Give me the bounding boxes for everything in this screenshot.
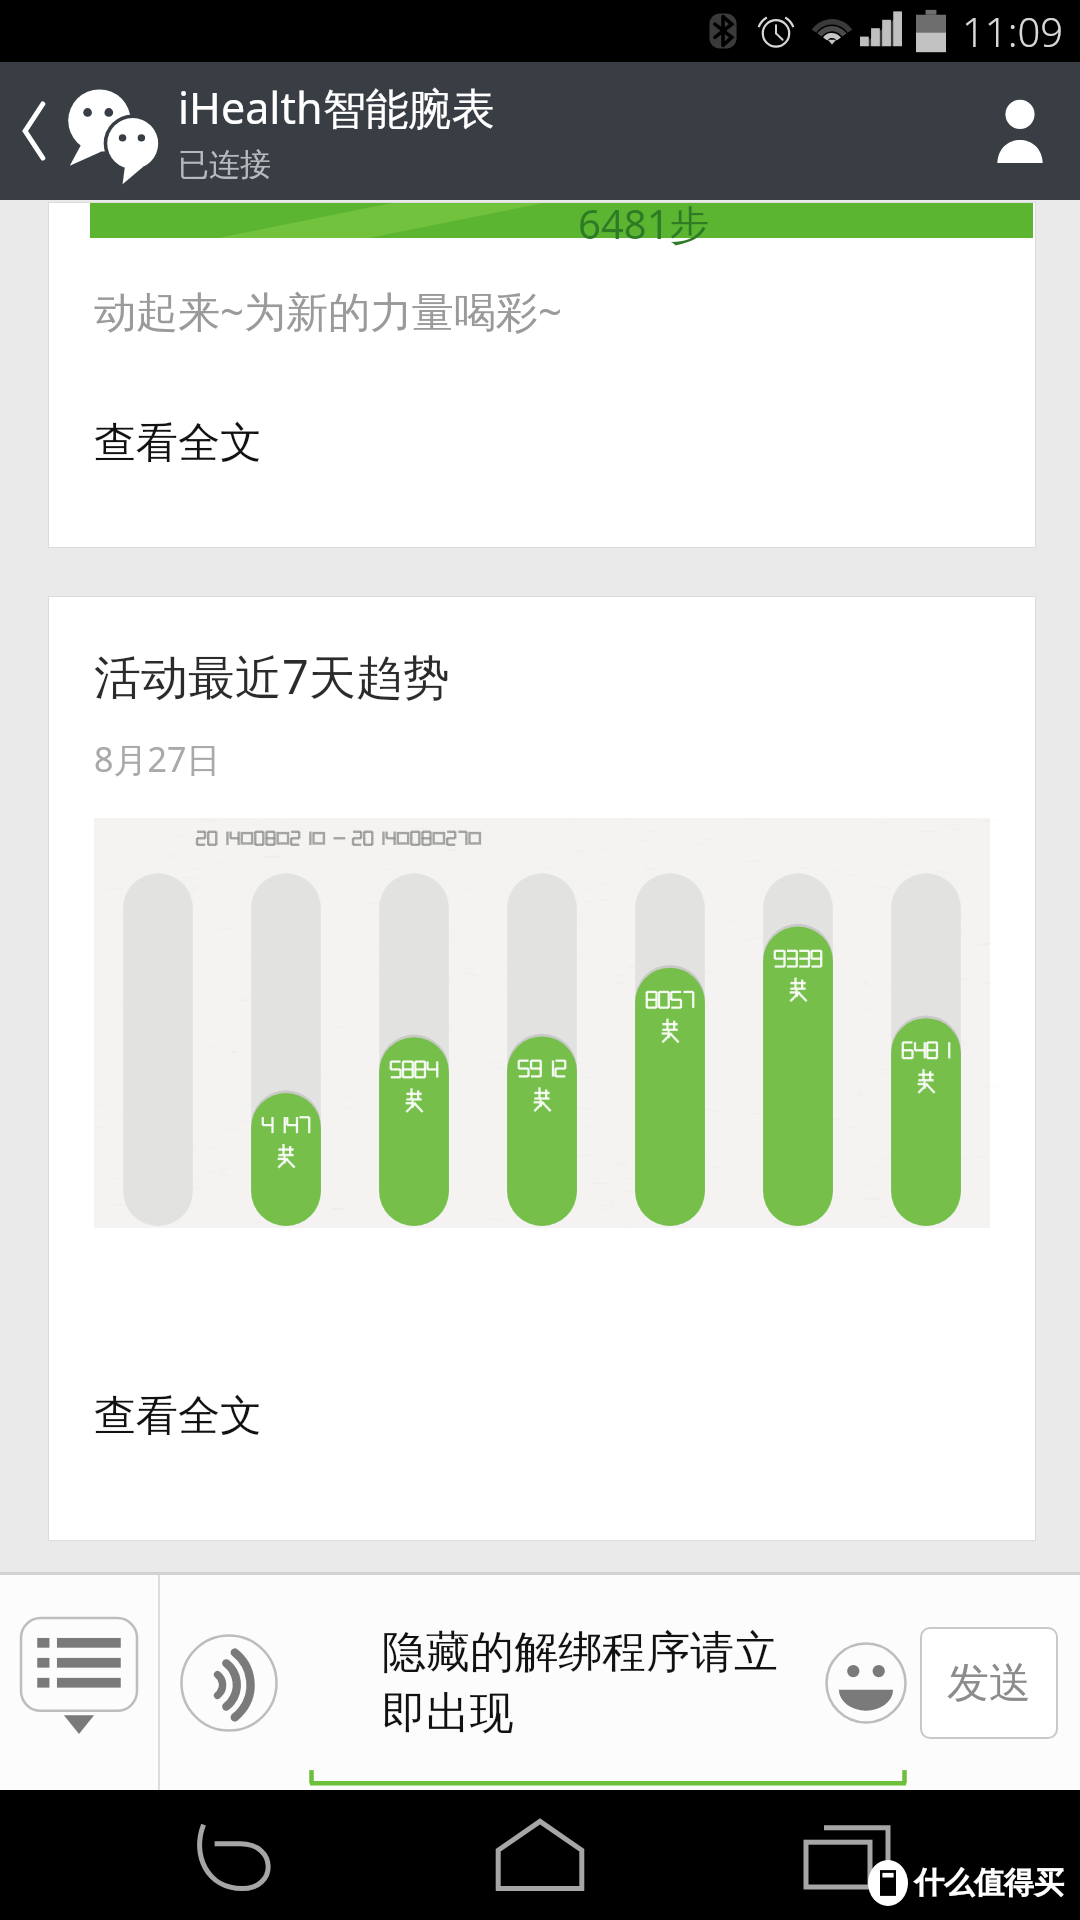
button[interactable]: Contact profile: [960, 62, 1080, 200]
button[interactable]: Menu: [0, 1575, 158, 1790]
button[interactable]: Back: [158, 1790, 308, 1920]
staticText: 11:09: [962, 4, 1064, 58]
staticText: 隐藏的解绑程序请立: [382, 1625, 778, 1680]
button[interactable]: Recent apps: [773, 1790, 923, 1920]
staticText: 动起来~为新的力量喝彩~: [94, 282, 563, 339]
staticText: 8月27日: [94, 736, 221, 782]
staticText: 即出现: [382, 1686, 514, 1741]
button[interactable]: Emoji: [818, 1608, 914, 1758]
button[interactable]: Back: [0, 62, 70, 200]
button[interactable]: 动起来~为新的力量喝彩~: [48, 202, 1036, 548]
staticText: 查看全文: [94, 417, 262, 470]
button[interactable]: Home: [465, 1790, 615, 1920]
staticText: 查看全文: [94, 1390, 262, 1443]
button[interactable]: 活动最近7天趋势: [48, 596, 1036, 1541]
button[interactable]: 发送: [920, 1627, 1058, 1739]
staticText: 已连接: [178, 145, 271, 184]
staticText: 发送: [947, 1657, 1031, 1710]
button[interactable]: 隐藏的解绑程序请立: [298, 1575, 914, 1790]
button[interactable]: 查看全文: [48, 417, 1036, 470]
staticText: 6481步: [578, 196, 710, 251]
button[interactable]: 查看全文: [48, 1390, 1036, 1443]
staticText: 什么值得买: [914, 1864, 1064, 1902]
staticText: iHealth智能腕表: [178, 78, 495, 137]
staticText: 活动最近7天趋势: [94, 644, 450, 708]
button[interactable]: Voice message: [160, 1575, 298, 1790]
